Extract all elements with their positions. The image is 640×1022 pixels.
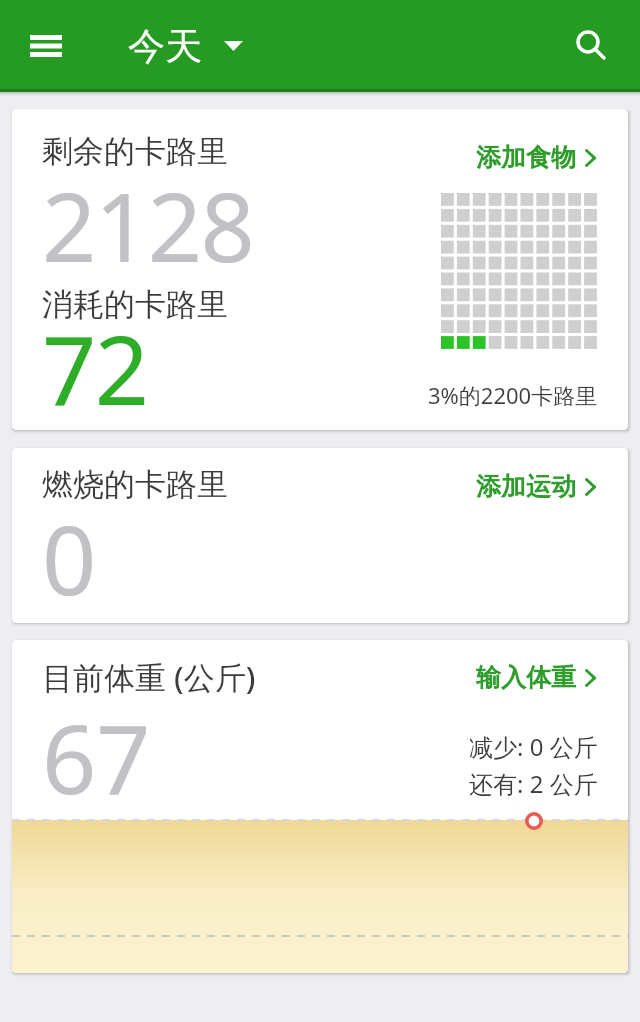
button[interactable]: 目前体重 (公斤) xyxy=(12,640,628,973)
staticText: 67 xyxy=(42,692,151,821)
button[interactable]: 添加运动 xyxy=(476,471,596,502)
staticText: 72 xyxy=(42,303,148,430)
staticText: 添加运动 xyxy=(476,471,576,502)
staticText: 目前体重 (公斤) xyxy=(42,656,256,698)
staticText: 输入体重 xyxy=(476,662,576,693)
staticText: 0 xyxy=(42,493,97,622)
staticText: 燃烧的卡路里 xyxy=(42,465,228,504)
button[interactable]: 燃烧的卡路里 xyxy=(12,448,628,623)
staticText: 消耗的卡路里 xyxy=(42,285,228,324)
staticText: 减少: 0 公斤 xyxy=(469,730,598,763)
button[interactable]: 输入体重 xyxy=(476,662,596,693)
button[interactable] xyxy=(576,30,606,60)
staticText: 今天 xyxy=(128,23,202,70)
staticText: 剩余的卡路里 xyxy=(42,132,228,171)
staticText: 2128 xyxy=(42,160,254,289)
button[interactable]: 添加食物 xyxy=(476,142,596,173)
button[interactable] xyxy=(30,35,62,57)
button[interactable]: 今天 xyxy=(128,0,243,92)
button[interactable]: 剩余的卡路里 xyxy=(12,109,628,430)
staticText: 还有: 2 公斤 xyxy=(469,767,598,800)
staticText: 添加食物 xyxy=(476,142,576,173)
staticText: 3%的2200卡路里 xyxy=(428,380,598,410)
